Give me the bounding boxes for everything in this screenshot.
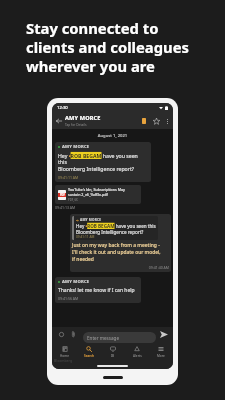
- staticText: Enter message: [87, 335, 120, 341]
- staticText: Search: [84, 354, 94, 357]
- staticText: IB: [111, 354, 115, 357]
- button[interactable]: AMY MORCE: [55, 277, 141, 303]
- staticText: 09:41:13 AM: [55, 205, 76, 210]
- button[interactable]: Send: [157, 327, 170, 342]
- button[interactable]: Call: [138, 115, 150, 127]
- button[interactable]: More: [149, 344, 173, 357]
- staticText: Home: [60, 354, 69, 357]
- staticText: AMY MORCE: [80, 218, 102, 222]
- staticText: August 1, 2021: [52, 133, 173, 139]
- staticText: AMY MORCE: [65, 114, 101, 122]
- button[interactable]: Emoji: [56, 327, 67, 341]
- button[interactable]: More options: [162, 116, 172, 126]
- staticText: PDF, 6X: [68, 198, 78, 202]
- button[interactable]: Enter message: [83, 332, 156, 343]
- button[interactable]: AMY MORCE: [65, 114, 101, 127]
- staticText: YouTube's bln, Subscriptions May sustain…: [68, 187, 138, 197]
- staticText: Bloomberg: [54, 358, 73, 363]
- button[interactable]: Back: [54, 116, 64, 126]
- button[interactable]: PDF: [55, 185, 141, 204]
- staticText: 09:41:11 AM: [76, 235, 95, 239]
- staticText: Stay connected to clients and colleagues…: [26, 18, 189, 76]
- staticText: Hey •ROB BEGAM have you seen this Bloomb…: [76, 223, 156, 235]
- staticText: AMY MORCE: [62, 144, 90, 150]
- staticText: 09:41:56 AM: [58, 296, 79, 301]
- button[interactable]: Favorite: [150, 115, 162, 127]
- button[interactable]: Alerts: [125, 344, 149, 357]
- staticText: 12:30: [57, 105, 68, 111]
- button[interactable]: Search: [77, 344, 101, 357]
- staticText: Just on my way back from a meeting - I'l…: [72, 242, 161, 263]
- staticText: AMY MORCE: [62, 279, 90, 285]
- staticText: More: [157, 354, 165, 357]
- button[interactable]: Home: [52, 344, 77, 357]
- staticText: Tap for Details: [65, 123, 87, 127]
- staticText: 09:41:11 AM: [58, 175, 79, 180]
- staticText: 09:41:40 AM: [72, 265, 169, 270]
- button[interactable]: AMY MORCE: [70, 214, 171, 272]
- button[interactable]: Attach: [68, 327, 79, 341]
- staticText: Hey •ROB BEGAM have you seen this Bloomb…: [58, 152, 148, 173]
- staticText: PDF: [60, 193, 65, 197]
- button[interactable]: AMY MORCE: [55, 142, 151, 182]
- staticText: Alerts: [133, 354, 142, 357]
- button[interactable]: IB: [101, 344, 125, 357]
- staticText: Thanks! let me know if I can help: [58, 287, 135, 294]
